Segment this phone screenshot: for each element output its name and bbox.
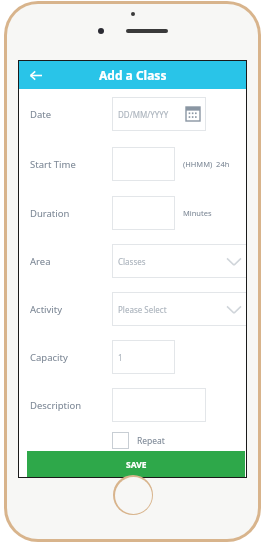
- button[interactable]: [112, 388, 206, 422]
- button[interactable]: SAVE: [27, 451, 245, 478]
- button[interactable]: 1: [112, 340, 175, 374]
- staticText: Description: [30, 399, 82, 412]
- staticText: Area: [30, 255, 51, 268]
- button[interactable]: Back: [24, 64, 46, 86]
- button[interactable]: [112, 147, 175, 181]
- button[interactable]: Please Select: [112, 292, 247, 326]
- staticText: (HHMM) 24h: [183, 159, 230, 169]
- staticText: SAVE: [126, 459, 147, 471]
- staticText: DD/MM/YYYY: [118, 109, 186, 120]
- button[interactable]: DD/MM/YYYY: [112, 97, 206, 131]
- button[interactable]: Repeat: [112, 432, 165, 449]
- staticText: 1: [118, 352, 169, 363]
- staticText: Repeat: [137, 435, 165, 447]
- staticText: Duration: [30, 207, 70, 220]
- button[interactable]: Home: [115, 477, 152, 514]
- staticText: Classes: [118, 256, 227, 267]
- staticText: Minutes: [183, 208, 212, 218]
- staticText: Add a Class: [99, 67, 167, 83]
- staticText: Capacity: [30, 351, 68, 364]
- staticText: Please Select: [118, 304, 227, 315]
- staticText: Date: [30, 108, 52, 121]
- staticText: Start Time: [30, 158, 76, 171]
- button[interactable]: Classes: [112, 244, 247, 278]
- staticText: Activity: [30, 303, 63, 316]
- button[interactable]: [112, 196, 175, 230]
